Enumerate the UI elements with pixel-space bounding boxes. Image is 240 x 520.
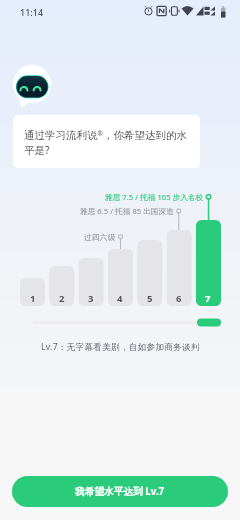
- staticText: 3: [88, 292, 94, 305]
- staticText: 1: [30, 292, 36, 305]
- staticText: 11:14: [20, 6, 44, 18]
- staticText: 7: [205, 292, 211, 305]
- staticText: 6: [176, 292, 182, 305]
- staticText: 5: [147, 292, 153, 305]
- staticText: 雅思 7.5 / 托福 105 步入名校: [105, 192, 204, 202]
- staticText: 2: [59, 292, 65, 305]
- staticText: 4: [117, 292, 123, 305]
- staticText: Lv.7：无字幕看美剧，自如参加商务谈判: [41, 341, 200, 353]
- staticText: 雅思 6.5 / 托福 85 出国深造: [80, 206, 174, 216]
- staticText: 过四六级: [84, 232, 116, 242]
- button[interactable]: 我希望水平达到 Lv.7: [12, 476, 228, 507]
- staticText: 通过学习流利说®，你希望达到的水平是?: [24, 129, 188, 157]
- staticText: 我希望水平达到 Lv.7: [75, 485, 165, 498]
